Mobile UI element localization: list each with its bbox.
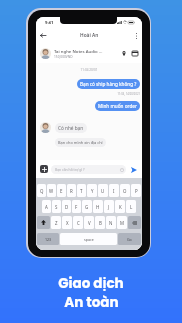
- staticText: B: [99, 220, 102, 226]
- staticText: Bạn cho mình xin địa chỉ: [58, 140, 103, 145]
- button[interactable]: H: [93, 200, 103, 213]
- staticText: K: [119, 204, 122, 210]
- staticText: Tai nghe Notes Audio ...: [54, 48, 103, 54]
- button[interactable]: M: [117, 216, 127, 229]
- staticText: X: [66, 220, 69, 226]
- staticText: 11:04, 14/20/2021: [36, 92, 140, 96]
- button[interactable]: Q: [37, 184, 46, 197]
- staticText: Hoài An: [80, 32, 99, 39]
- staticText: Q: [40, 188, 44, 194]
- staticText: An toàn: [64, 293, 119, 312]
- button[interactable]: Go: [118, 233, 141, 245]
- staticText: Z: [55, 220, 58, 226]
- button[interactable]: S: [52, 200, 61, 213]
- staticText: E: [60, 188, 63, 194]
- button[interactable]: A: [42, 200, 51, 213]
- button[interactable]: space: [60, 233, 117, 245]
- staticText: I: [113, 188, 115, 194]
- button[interactable]: J: [104, 200, 114, 213]
- staticText: J: [108, 204, 110, 210]
- staticText: A: [45, 204, 48, 210]
- button[interactable]: T: [77, 184, 86, 197]
- staticText: U: [101, 188, 105, 194]
- button[interactable]: 123: [37, 233, 59, 245]
- button[interactable]: R: [67, 184, 76, 197]
- staticText: 150,000VND: [54, 55, 73, 59]
- staticText: Bạn có ship hàng không ?: [80, 81, 137, 87]
- staticText: G: [85, 204, 89, 210]
- button[interactable]: E: [57, 184, 66, 197]
- button[interactable]: C: [73, 216, 83, 229]
- button[interactable]: More options: [130, 28, 142, 43]
- staticText: 123: [45, 237, 52, 242]
- button[interactable]: Bạn có ship hàng không ?: [77, 79, 140, 89]
- staticText: 9:41: [45, 20, 54, 26]
- button[interactable]: B: [95, 216, 105, 229]
- staticText: Go: [127, 237, 132, 242]
- button[interactable]: K: [115, 200, 125, 213]
- button[interactable]: Payment: [130, 43, 139, 63]
- staticText: M: [120, 220, 124, 226]
- button[interactable]: W: [47, 184, 56, 197]
- staticText: O: [123, 188, 127, 194]
- button[interactable]: Tai nghe Notes Audio ...: [36, 43, 142, 63]
- staticText: W: [49, 188, 54, 194]
- staticText: space: [84, 237, 94, 242]
- button[interactable]: N: [106, 216, 116, 229]
- staticText: Mình muốn order: [98, 103, 137, 109]
- button[interactable]: D: [62, 200, 71, 213]
- button[interactable]: G: [82, 200, 92, 213]
- staticText: R: [70, 188, 73, 194]
- button[interactable]: del: [128, 216, 141, 229]
- button[interactable]: Send: [129, 165, 138, 174]
- staticText: S: [55, 204, 58, 210]
- staticText: N: [109, 220, 113, 226]
- staticText: Có nhé bạn: [58, 125, 84, 131]
- button[interactable]: L: [126, 200, 136, 213]
- staticText: 11:04 20/01: [36, 68, 142, 72]
- button[interactable]: F: [72, 200, 81, 213]
- staticText: V: [88, 220, 91, 226]
- button[interactable]: Z: [51, 216, 61, 229]
- staticText: Y: [91, 188, 94, 194]
- button[interactable]: Back: [36, 28, 50, 43]
- button[interactable]: Y: [87, 184, 97, 197]
- staticText: L: [130, 204, 133, 210]
- button[interactable]: Có nhé bạn: [55, 123, 87, 133]
- button[interactable]: shift: [37, 216, 50, 229]
- staticText: Giao dịch: [58, 274, 124, 293]
- button[interactable]: Add attachment: [40, 165, 48, 173]
- staticText: F: [75, 204, 78, 210]
- staticText: D: [65, 204, 69, 210]
- button[interactable]: V: [84, 216, 94, 229]
- button[interactable]: Location: [119, 43, 128, 63]
- button[interactable]: X: [62, 216, 72, 229]
- staticText: C: [77, 220, 80, 226]
- button[interactable]: Mình muốn order: [95, 101, 140, 111]
- staticText: P: [135, 188, 138, 194]
- button[interactable]: Bạn cho mình xin địa chỉ: [55, 138, 106, 147]
- button[interactable]: I: [109, 184, 119, 197]
- staticText: T: [80, 188, 83, 194]
- button[interactable]: O: [120, 184, 130, 197]
- staticText: H: [96, 204, 100, 210]
- button[interactable]: U: [98, 184, 108, 197]
- staticText: Bạn cần hỗ trợ gì ?: [55, 167, 120, 172]
- button[interactable]: P: [131, 184, 141, 197]
- button[interactable]: Bạn cần hỗ trợ gì ?: [51, 165, 126, 174]
